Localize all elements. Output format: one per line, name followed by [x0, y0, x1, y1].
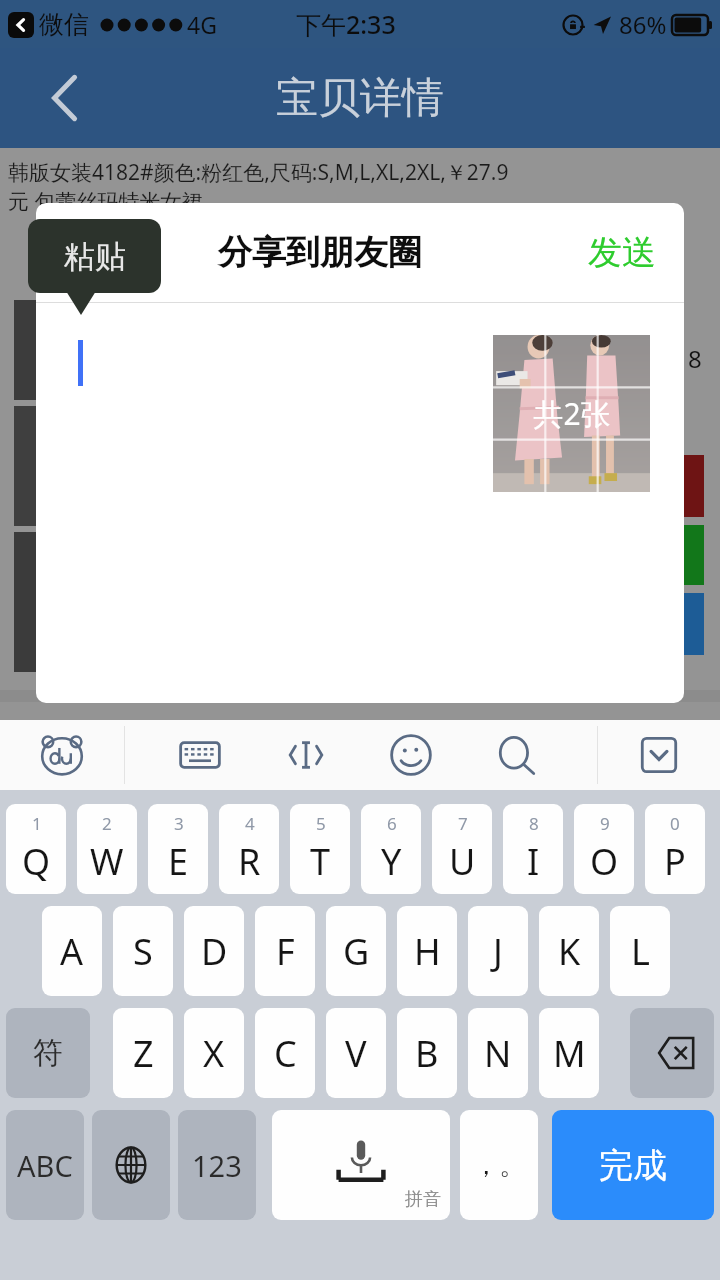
staticText: N: [484, 1029, 512, 1078]
staticText: I: [527, 837, 540, 886]
button[interactable]: H: [397, 906, 457, 996]
staticText: 4G: [187, 9, 217, 40]
staticText: 发送: [588, 231, 656, 274]
button[interactable]: M: [539, 1008, 599, 1098]
button[interactable]: 9: [574, 804, 634, 894]
staticText: Y: [381, 837, 402, 886]
button[interactable]: 3: [148, 804, 208, 894]
button[interactable]: 1: [6, 804, 66, 894]
button[interactable]: 粘贴: [28, 219, 161, 293]
button[interactable]: 表情: [371, 720, 451, 790]
button[interactable]: K: [539, 906, 599, 996]
button[interactable]: A: [42, 906, 102, 996]
staticText: 8: [688, 342, 702, 375]
staticText: B: [415, 1029, 439, 1078]
staticText: J: [493, 927, 503, 976]
button[interactable]: 完成: [552, 1110, 714, 1220]
button[interactable]: 0: [645, 804, 705, 894]
staticText: 6: [387, 812, 397, 835]
staticText: 9: [600, 812, 610, 835]
button[interactable]: ，。: [460, 1110, 538, 1220]
button[interactable]: 符: [6, 1008, 90, 1098]
button[interactable]: 返回: [38, 71, 92, 125]
button[interactable]: 百度输入法: [22, 720, 102, 790]
staticText: 分享到朋友圈: [218, 231, 422, 274]
button[interactable]: 共2张: [493, 335, 650, 492]
button[interactable]: 8: [503, 804, 563, 894]
staticText: O: [590, 837, 619, 886]
button[interactable]: 收起键盘: [619, 720, 699, 790]
staticText: 0: [670, 812, 680, 835]
button[interactable]: 123: [178, 1110, 256, 1220]
button[interactable]: 7: [432, 804, 492, 894]
staticText: G: [343, 927, 370, 976]
staticText: A: [60, 927, 84, 976]
staticText: W: [90, 837, 124, 886]
staticText: 1: [32, 812, 42, 835]
button[interactable]: 切换语言: [92, 1110, 170, 1220]
button[interactable]: 5: [290, 804, 350, 894]
button[interactable]: ABC: [6, 1110, 84, 1220]
staticText: 元 包蕾丝玛特米女裙: [8, 187, 203, 216]
button[interactable]: C: [255, 1008, 315, 1098]
button[interactable]: 6: [361, 804, 421, 894]
staticText: F: [276, 927, 295, 976]
button[interactable]: 键盘: [160, 720, 240, 790]
button[interactable]: B: [397, 1008, 457, 1098]
staticText: Q: [22, 837, 51, 886]
staticText: 返回: [64, 233, 128, 273]
button[interactable]: D: [184, 906, 244, 996]
staticText: Z: [133, 1029, 154, 1078]
staticText: L: [631, 927, 650, 976]
button[interactable]: 发送: [582, 223, 662, 282]
button[interactable]: Z: [113, 1008, 173, 1098]
staticText: D: [201, 927, 228, 976]
staticText: ABC: [17, 1146, 73, 1185]
staticText: 符: [33, 1034, 63, 1072]
staticText: K: [558, 927, 581, 976]
staticText: 韩版女装4182#颜色:粉红色,尺码:S,M,L,XL,2XL,￥27.9: [8, 158, 509, 187]
button[interactable]: 光标移动: [266, 720, 346, 790]
staticText: 宝贝详情: [276, 72, 444, 125]
staticText: ，。: [473, 1149, 525, 1182]
staticText: 123: [192, 1146, 242, 1185]
staticText: 8: [529, 812, 539, 835]
staticText: 粘贴: [64, 237, 126, 276]
button[interactable]: 返回: [58, 225, 134, 281]
staticText: 下午2:33: [296, 7, 396, 41]
staticText: P: [664, 837, 686, 886]
staticText: T: [310, 837, 331, 886]
staticText: 共2张: [533, 393, 611, 434]
staticText: R: [238, 837, 261, 886]
staticText: 2: [102, 812, 112, 835]
button[interactable]: 搜索: [477, 720, 557, 790]
button[interactable]: V: [326, 1008, 386, 1098]
button[interactable]: S: [113, 906, 173, 996]
button[interactable]: X: [184, 1008, 244, 1098]
staticText: 3: [174, 812, 184, 835]
staticText: V: [345, 1029, 367, 1078]
staticText: H: [414, 927, 441, 976]
staticText: 拼音: [405, 1188, 441, 1211]
staticText: 微信: [39, 9, 89, 40]
button[interactable]: 删除: [630, 1008, 714, 1098]
staticText: X: [203, 1029, 225, 1078]
button[interactable]: 4: [219, 804, 279, 894]
staticText: 7: [458, 812, 468, 835]
button[interactable]: 空格: [272, 1110, 450, 1220]
button[interactable]: N: [468, 1008, 528, 1098]
staticText: S: [133, 927, 153, 976]
staticText: U: [449, 837, 476, 886]
button[interactable]: L: [610, 906, 670, 996]
staticText: 86%: [619, 8, 667, 41]
staticText: E: [168, 837, 189, 886]
staticText: 完成: [599, 1144, 667, 1187]
staticText: M: [553, 1029, 586, 1078]
staticText: C: [274, 1029, 297, 1078]
staticText: 4: [245, 812, 255, 835]
button[interactable]: G: [326, 906, 386, 996]
button[interactable]: 2: [77, 804, 137, 894]
staticText: 5: [316, 812, 326, 835]
button[interactable]: J: [468, 906, 528, 996]
button[interactable]: F: [255, 906, 315, 996]
